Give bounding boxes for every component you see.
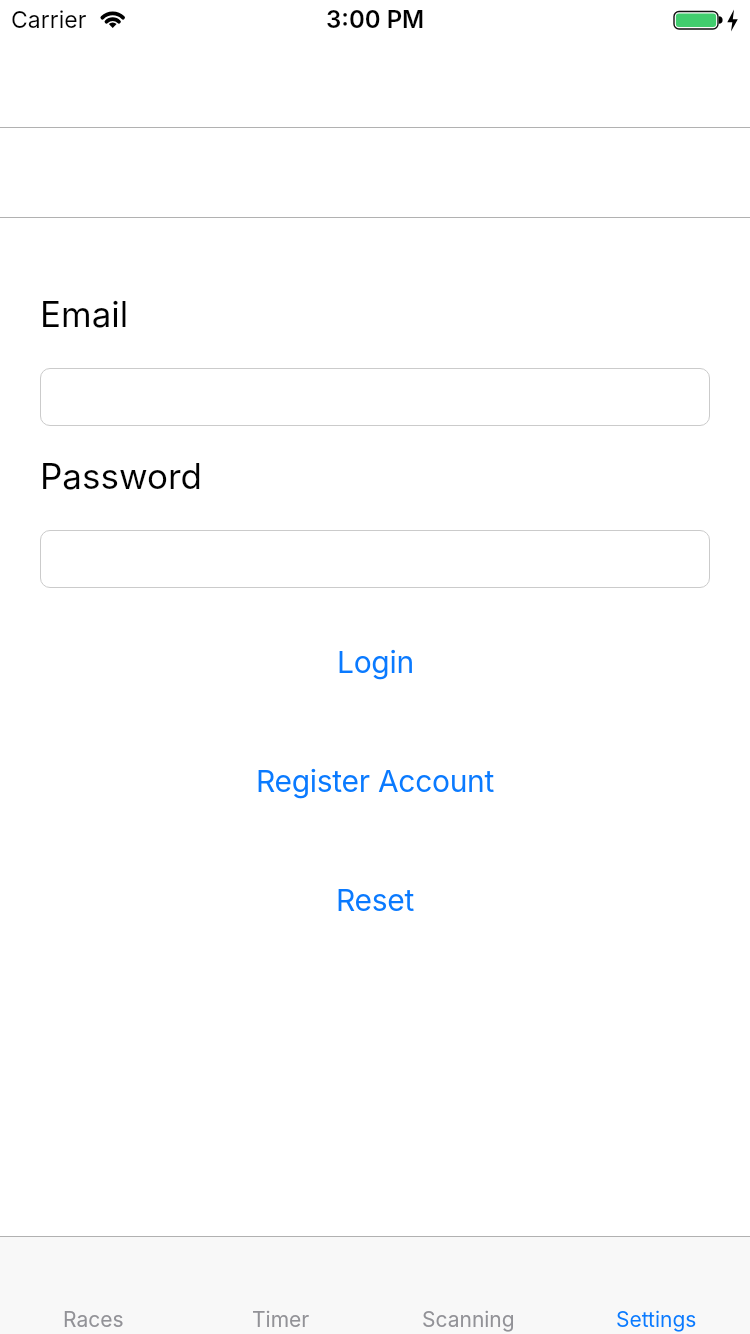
staticText: Email: [40, 293, 129, 335]
staticText: Timer: [252, 1307, 310, 1332]
button[interactable]: Register Account: [250, 761, 501, 801]
button[interactable]: Reset: [330, 880, 420, 920]
staticText: Register Account: [256, 763, 495, 799]
button[interactable]: [40, 368, 710, 426]
staticText: Password: [40, 455, 202, 497]
staticText: Races: [63, 1307, 124, 1332]
staticText: Reset: [336, 882, 414, 918]
button[interactable]: Settings: [562, 1236, 750, 1334]
button[interactable]: [40, 530, 710, 588]
staticText: Scanning: [422, 1307, 515, 1332]
button[interactable]: Races: [0, 1236, 187, 1334]
staticText: Settings: [616, 1307, 697, 1332]
button[interactable]: Login: [331, 642, 420, 682]
button[interactable]: Timer: [187, 1236, 374, 1334]
staticText: Carrier: [11, 6, 87, 34]
button[interactable]: Scanning: [374, 1236, 562, 1334]
staticText: Login: [337, 644, 414, 680]
staticText: 3:00 PM: [326, 5, 425, 34]
